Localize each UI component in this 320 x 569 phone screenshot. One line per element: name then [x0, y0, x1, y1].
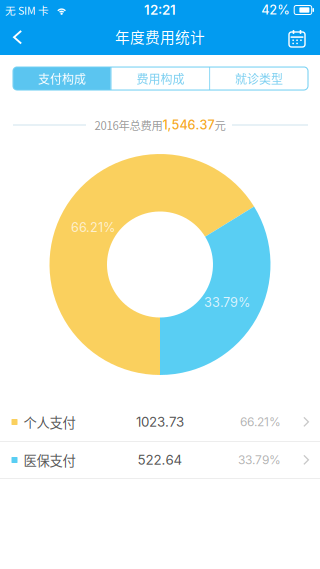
- staticText: 费用构成: [136, 70, 184, 87]
- staticText: 个人支付: [23, 412, 75, 432]
- staticText: 无 SIM 卡: [5, 2, 49, 18]
- staticText: 支付构成: [38, 70, 86, 87]
- staticText: 66.21%: [71, 220, 115, 235]
- staticText: 66.21%: [240, 415, 281, 429]
- staticText: 1023.73: [136, 414, 184, 430]
- staticText: 元: [214, 117, 225, 133]
- staticText: 42%: [261, 2, 290, 18]
- staticText: 就诊类型: [235, 70, 283, 87]
- staticText: 2016年总费用: [94, 117, 162, 133]
- button[interactable]: 医保支付: [0, 442, 320, 478]
- button[interactable]: 费用构成: [112, 67, 209, 90]
- button[interactable]: 就诊类型: [210, 67, 308, 90]
- staticText: 1,546.37: [162, 117, 214, 133]
- staticText: 33.79%: [204, 295, 250, 310]
- staticText: 12:21: [144, 2, 176, 18]
- staticText: 医保支付: [23, 450, 75, 470]
- staticText: 年度费用统计: [115, 26, 205, 47]
- button[interactable]: Calendar: [280, 20, 314, 55]
- staticText: 522.64: [137, 452, 182, 468]
- staticText: 33.79%: [238, 453, 281, 467]
- button[interactable]: 个人支付: [0, 403, 320, 441]
- button[interactable]: Back: [0, 20, 34, 55]
- button[interactable]: 支付构成: [13, 67, 111, 90]
